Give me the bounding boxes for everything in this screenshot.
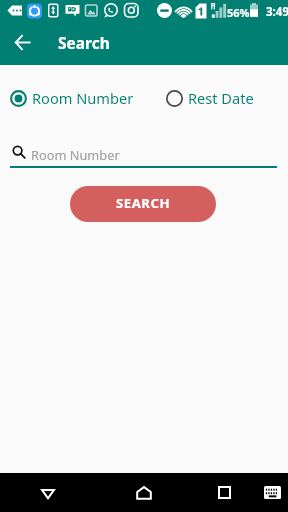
button[interactable]: Room Number xyxy=(10,86,134,110)
button[interactable]: Recents xyxy=(204,473,245,512)
button[interactable]: Back xyxy=(4,24,40,65)
button[interactable]: Rest Date xyxy=(166,86,254,110)
button[interactable]: Back xyxy=(27,473,69,512)
button[interactable]: Home xyxy=(122,473,166,512)
staticText: Rest Date xyxy=(188,88,254,108)
button[interactable]: SEARCH xyxy=(70,186,216,222)
staticText: Room Number xyxy=(31,146,120,163)
staticText: Room Number xyxy=(32,88,134,108)
staticText: SEARCH xyxy=(116,194,170,212)
staticText: Search xyxy=(58,32,110,53)
staticText: 56% xyxy=(227,5,250,20)
staticText: 3:49 xyxy=(266,4,288,20)
button[interactable]: Keyboard xyxy=(250,473,288,512)
